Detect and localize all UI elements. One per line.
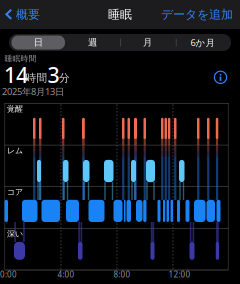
staticText: 日 <box>34 37 43 48</box>
staticText: コア <box>7 187 23 197</box>
staticText: 週 <box>88 37 97 48</box>
button[interactable]: 月 <box>120 34 175 50</box>
button[interactable]: 概要 <box>0 7 40 22</box>
staticText: レム <box>7 146 23 155</box>
staticText: 8:00 <box>113 269 130 280</box>
button[interactable]: 詳細情報 <box>213 70 227 84</box>
staticText: 深い <box>7 229 23 239</box>
staticText: 14 <box>4 60 28 89</box>
button[interactable]: 週 <box>65 34 120 50</box>
staticText: 6か月 <box>190 36 214 49</box>
staticText: 概要 <box>16 7 40 22</box>
staticText: 4:00 <box>57 269 74 280</box>
staticText: 睡眠 <box>108 7 132 22</box>
button[interactable]: 日 <box>11 35 65 49</box>
staticText: 2025年8月13日 <box>2 85 64 98</box>
staticText: 覚醒 <box>7 104 23 114</box>
staticText: 分 <box>59 71 70 84</box>
staticText: 睡眠時間 <box>4 54 36 64</box>
button[interactable]: データを追加 <box>161 7 240 22</box>
staticText: 12:00 <box>168 269 190 280</box>
staticText: 3 <box>47 60 59 89</box>
staticText: 時間 <box>25 71 47 84</box>
staticText: データを追加 <box>161 7 233 22</box>
staticText: 月 <box>143 37 152 48</box>
staticText: 0:00 <box>0 269 17 280</box>
button[interactable]: 6か月 <box>175 34 230 50</box>
